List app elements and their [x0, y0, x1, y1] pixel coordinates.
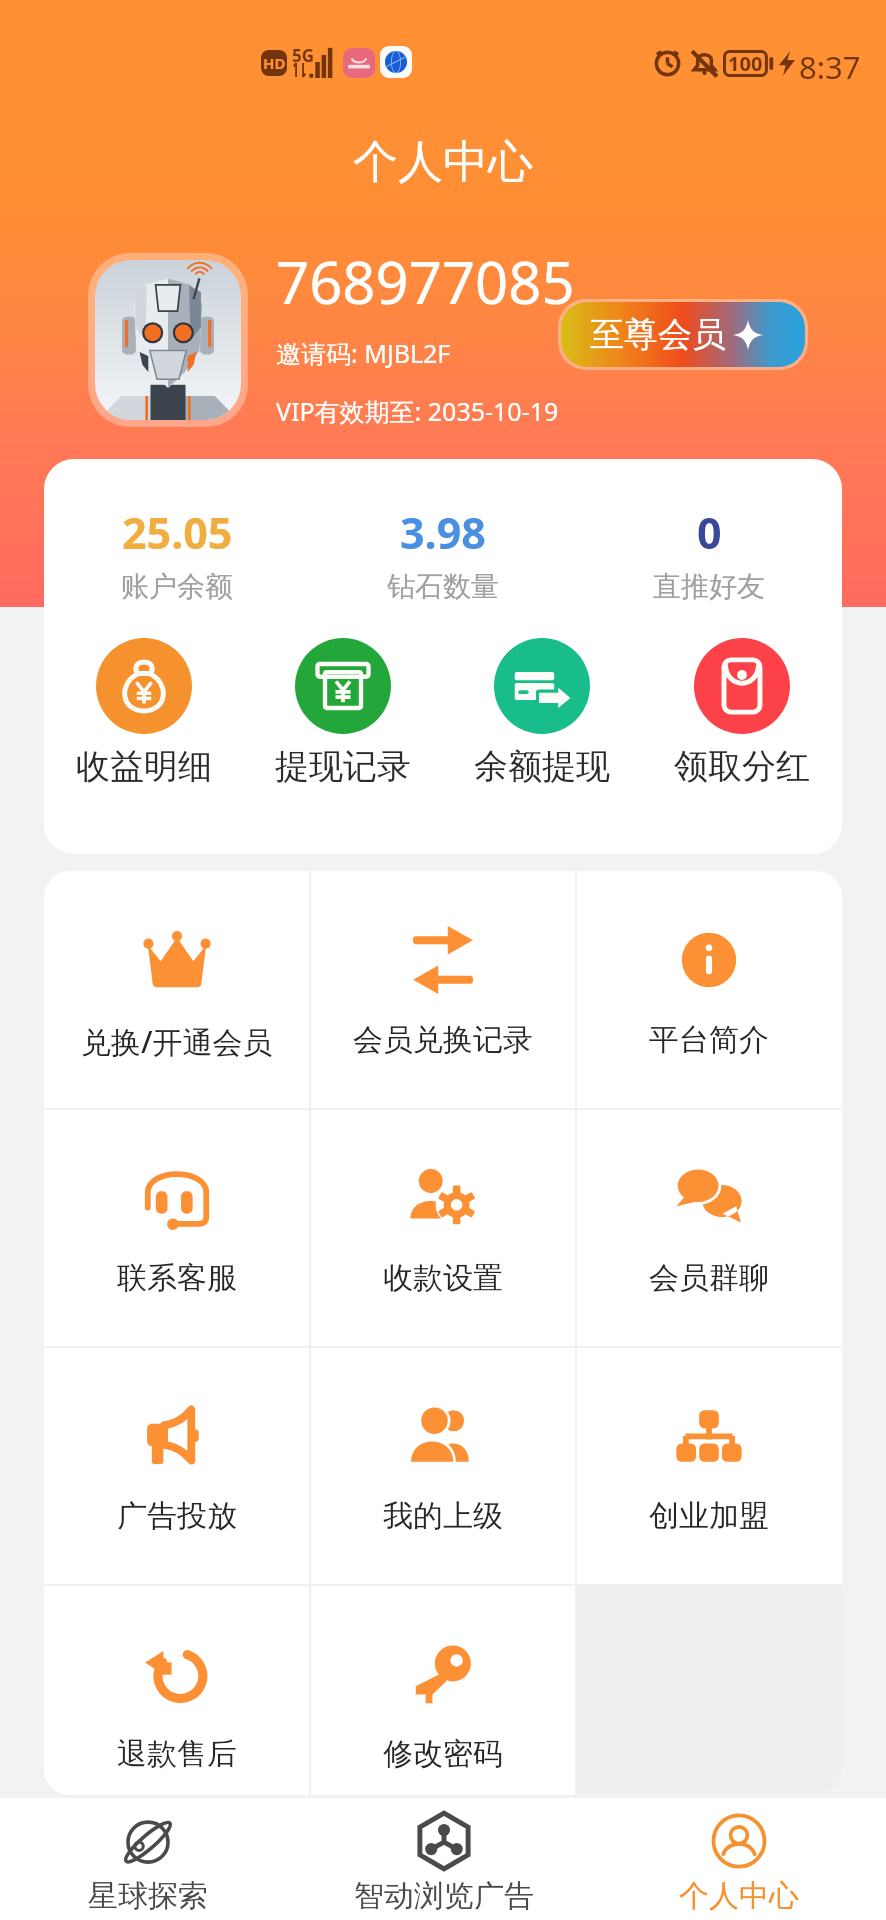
button[interactable]: 创业加盟 — [576, 1347, 842, 1585]
button[interactable]: 收益明细 — [44, 638, 243, 788]
staticText: 会员兑换记录 — [353, 1021, 533, 1059]
staticText: 智动浏览广告 — [354, 1877, 534, 1915]
staticText: 768977085 — [276, 242, 575, 321]
button[interactable]: 退款售后 — [44, 1585, 310, 1795]
staticText: 收款设置 — [383, 1259, 503, 1297]
staticText: 兑换/开通会员 — [81, 1021, 273, 1062]
button[interactable]: 领取分红 — [642, 638, 842, 788]
staticText: 退款售后 — [117, 1735, 237, 1773]
button[interactable]: 收款设置 — [310, 1109, 576, 1347]
button[interactable]: 25.05 — [44, 503, 310, 604]
staticText: 星球探索 — [88, 1877, 208, 1915]
staticText: 25.05 — [122, 503, 233, 562]
staticText: 5G — [292, 44, 315, 67]
button[interactable]: 智动浏览广告 — [296, 1798, 591, 1920]
staticText: 直推好友 — [653, 569, 765, 604]
staticText: VIP有效期至: 2035-10-19 — [276, 394, 559, 428]
staticText: 个人中心 — [679, 1877, 799, 1915]
staticText: 提现记录 — [275, 745, 411, 788]
button[interactable]: 3.98 — [310, 503, 576, 604]
staticText: 账户余额 — [121, 569, 233, 604]
staticText: 平台简介 — [649, 1021, 769, 1059]
staticText: 个人中心 — [353, 134, 533, 191]
staticText: 余额提现 — [474, 745, 610, 788]
staticText: 钻石数量 — [387, 569, 499, 604]
button[interactable]: 广告投放 — [44, 1347, 310, 1585]
staticText: 8:37 — [799, 46, 861, 88]
staticText: 广告投放 — [117, 1497, 237, 1535]
button[interactable]: Avatar — [95, 260, 241, 420]
button[interactable]: 0 — [576, 503, 842, 604]
staticText: 0 — [697, 503, 722, 562]
button[interactable]: 至尊会员 — [561, 302, 805, 367]
staticText: 邀请码: MJBL2F — [276, 336, 451, 370]
button[interactable]: 个人中心 — [591, 1798, 886, 1920]
button[interactable]: 我的上级 — [310, 1347, 576, 1585]
button[interactable]: 会员兑换记录 — [310, 871, 576, 1109]
staticText: 会员群聊 — [649, 1259, 769, 1297]
button[interactable]: 修改密码 — [310, 1585, 576, 1795]
button[interactable]: 平台简介 — [576, 871, 842, 1109]
staticText: 创业加盟 — [649, 1497, 769, 1535]
button[interactable]: 会员群聊 — [576, 1109, 842, 1347]
button[interactable]: 星球探索 — [0, 1798, 296, 1920]
button[interactable]: 联系客服 — [44, 1109, 310, 1347]
staticText: 至尊会员 — [590, 313, 726, 356]
button[interactable]: 提现记录 — [243, 638, 442, 788]
staticText: HD — [263, 53, 286, 73]
button[interactable]: 余额提现 — [442, 638, 642, 788]
staticText: 我的上级 — [383, 1497, 503, 1535]
staticText: 收益明细 — [76, 745, 212, 788]
staticText: 修改密码 — [383, 1735, 503, 1773]
staticText: 领取分红 — [674, 745, 810, 788]
button[interactable]: 兑换/开通会员 — [44, 871, 310, 1109]
staticText: 100 — [728, 50, 763, 77]
staticText: 3.98 — [400, 503, 486, 562]
staticText: 联系客服 — [117, 1259, 237, 1297]
